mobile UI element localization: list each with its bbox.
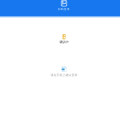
button[interactable]: 扫码登录 xyxy=(0,0,120,16)
staticText: 请在手机上确认登录 xyxy=(50,73,77,77)
staticText: 扫码登录 xyxy=(58,8,70,11)
staticText: 确认中 xyxy=(59,40,68,44)
